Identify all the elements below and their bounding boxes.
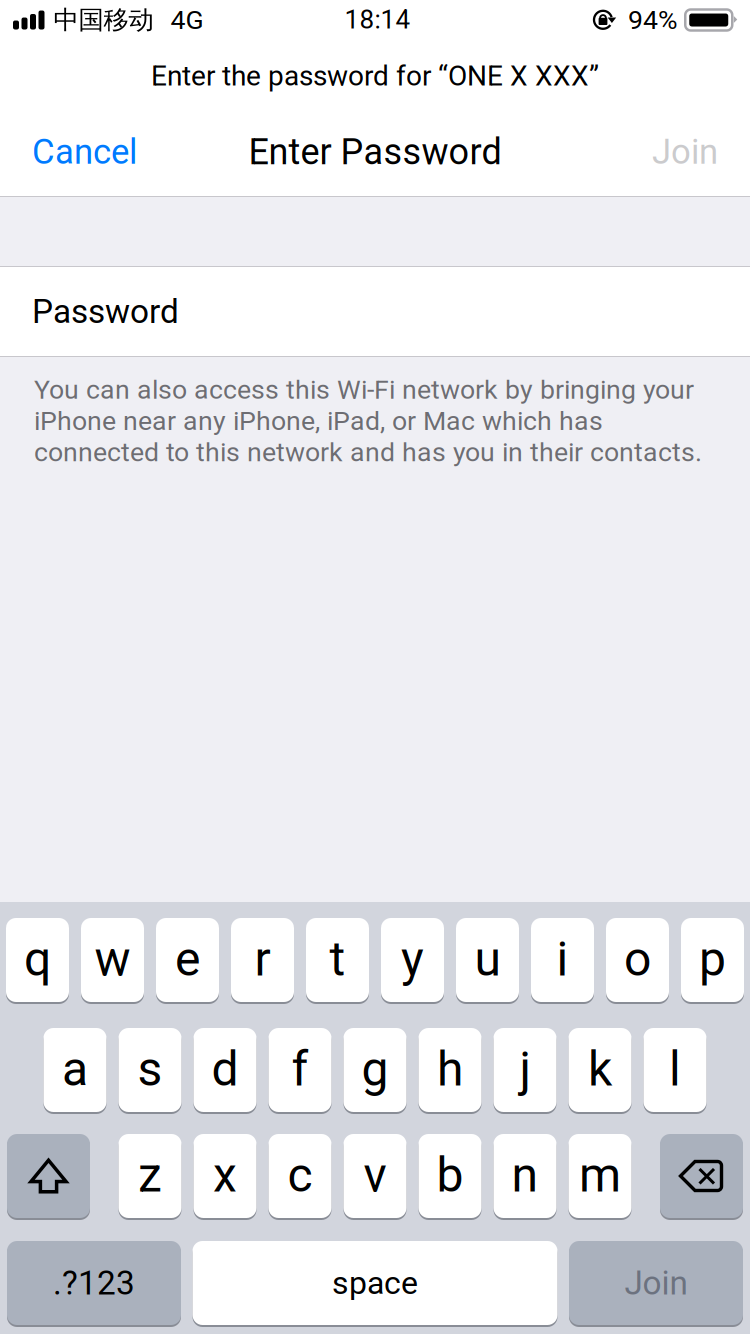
button[interactable]: Password xyxy=(0,267,750,356)
staticText: w xyxy=(94,931,130,987)
button[interactable]: u xyxy=(456,917,519,1003)
staticText: y xyxy=(401,931,424,987)
staticText: q xyxy=(24,931,51,987)
staticText: c xyxy=(287,1147,312,1203)
staticText: Enter Password xyxy=(248,131,501,173)
staticText: g xyxy=(361,1041,388,1097)
button[interactable]: g xyxy=(343,1027,406,1113)
button[interactable]: h xyxy=(418,1027,481,1113)
staticText: a xyxy=(62,1041,88,1097)
staticText: s xyxy=(137,1041,162,1097)
button[interactable]: e xyxy=(156,917,219,1003)
button[interactable]: l xyxy=(643,1027,706,1113)
staticText: t xyxy=(329,931,345,987)
button[interactable]: d xyxy=(193,1027,256,1113)
staticText: z xyxy=(138,1147,162,1203)
staticText: j xyxy=(519,1041,530,1097)
button[interactable]: k xyxy=(568,1027,631,1113)
button[interactable]: space xyxy=(192,1240,557,1326)
staticText: x xyxy=(213,1147,237,1203)
staticText: Join xyxy=(624,1263,687,1303)
button[interactable]: o xyxy=(606,917,669,1003)
button[interactable]: m xyxy=(568,1133,631,1219)
button[interactable]: s xyxy=(118,1027,181,1113)
button[interactable]: .?123 xyxy=(7,1240,181,1326)
button[interactable]: r xyxy=(231,917,294,1003)
button[interactable]: Cancel xyxy=(20,113,149,185)
staticText: d xyxy=(211,1041,238,1097)
button[interactable]: w xyxy=(81,917,144,1003)
staticText: .?123 xyxy=(53,1263,135,1303)
button[interactable]: Join xyxy=(569,1240,743,1326)
button[interactable]: y xyxy=(381,917,444,1003)
staticText: u xyxy=(474,931,500,987)
button[interactable]: f xyxy=(268,1027,331,1113)
button[interactable]: b xyxy=(418,1133,481,1219)
staticText: n xyxy=(511,1147,538,1203)
staticText: o xyxy=(624,931,651,987)
staticText: h xyxy=(437,1041,463,1097)
button[interactable]: i xyxy=(531,917,594,1003)
button[interactable]: z xyxy=(118,1133,181,1219)
staticText: l xyxy=(669,1041,681,1097)
staticText: v xyxy=(363,1147,386,1203)
staticText: m xyxy=(579,1147,621,1203)
button[interactable]: q xyxy=(6,917,69,1003)
staticText: f xyxy=(291,1041,308,1097)
button[interactable]: Join xyxy=(640,113,730,185)
button[interactable]: Shift xyxy=(7,1133,90,1219)
staticText: r xyxy=(254,931,270,987)
button[interactable]: a xyxy=(43,1027,106,1113)
button[interactable]: x xyxy=(193,1133,256,1219)
staticText: Password xyxy=(32,292,179,331)
button[interactable]: j xyxy=(493,1027,556,1113)
button[interactable]: n xyxy=(493,1133,556,1219)
staticText: 94% xyxy=(628,4,678,36)
staticText: 中国移动 xyxy=(53,4,153,36)
button[interactable]: Delete xyxy=(660,1133,743,1219)
staticText: Enter the password for “ONE X XXX” xyxy=(151,60,599,92)
staticText: b xyxy=(436,1147,463,1203)
staticText: e xyxy=(175,931,200,987)
staticText: You can also access this Wi-Fi network b… xyxy=(34,374,702,468)
button[interactable]: t xyxy=(306,917,369,1003)
button[interactable]: c xyxy=(268,1133,331,1219)
button[interactable]: p xyxy=(681,917,744,1003)
staticText: Cancel xyxy=(32,132,137,172)
staticText: 4G xyxy=(170,4,203,36)
staticText: Join xyxy=(652,132,718,172)
staticText: k xyxy=(588,1041,612,1097)
staticText: 18:14 xyxy=(344,4,410,35)
staticText: i xyxy=(556,931,568,987)
staticText: space xyxy=(332,1264,418,1302)
button[interactable]: v xyxy=(343,1133,406,1219)
staticText: p xyxy=(699,931,726,987)
